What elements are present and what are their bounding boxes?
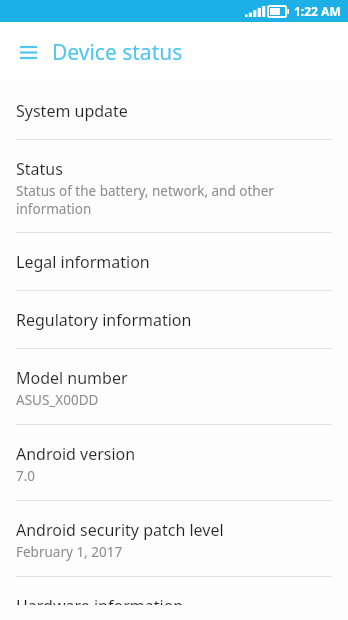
- button[interactable]: Legal information: [0, 233, 348, 290]
- staticText: Android version: [16, 443, 136, 465]
- button[interactable]: Model number: [0, 349, 348, 424]
- staticText: System update: [16, 100, 128, 122]
- staticText: Model number: [16, 367, 128, 389]
- staticText: Legal information: [16, 251, 150, 273]
- staticText: Status: [16, 158, 63, 180]
- staticText: Status of the battery, network, and othe…: [16, 182, 332, 218]
- button[interactable]: Android version: [0, 425, 348, 500]
- button[interactable]: Hardware information: [0, 577, 348, 620]
- button[interactable]: Regulatory information: [0, 291, 348, 348]
- staticText: Android security patch level: [16, 519, 224, 541]
- staticText: Hardware information: [16, 595, 184, 605]
- staticText: 1:22 AM: [294, 3, 341, 19]
- staticText: ASUS_X00DD: [16, 391, 99, 409]
- button[interactable]: System update: [0, 82, 348, 139]
- staticText: 7.0: [16, 467, 36, 485]
- staticText: Device status: [52, 38, 183, 67]
- staticText: Regulatory information: [16, 309, 192, 331]
- staticText: February 1, 2017: [16, 543, 123, 561]
- button[interactable]: Open navigation menu: [9, 33, 47, 71]
- button[interactable]: Status: [0, 140, 348, 232]
- button[interactable]: Android security patch level: [0, 501, 348, 576]
